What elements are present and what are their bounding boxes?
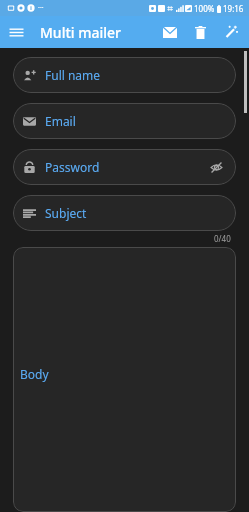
button[interactable]: Send mail <box>155 17 185 47</box>
staticText: Body <box>20 366 49 382</box>
button[interactable]: Open navigation menu <box>0 16 32 48</box>
staticText: ··· <box>38 3 44 13</box>
staticText: 19:16 <box>223 3 244 14</box>
button[interactable]: Body <box>13 247 236 512</box>
staticText: 0/40 <box>214 233 231 244</box>
staticText: Password <box>45 159 100 175</box>
staticText: 100% <box>194 3 215 14</box>
button[interactable]: Magic fill <box>215 16 247 48</box>
button[interactable]: Delete <box>185 17 215 47</box>
staticText: Email <box>45 113 76 129</box>
button[interactable]: Email <box>13 103 236 139</box>
button[interactable]: Password <box>13 149 236 185</box>
staticText: Full name <box>45 67 101 83</box>
staticText: Multi mailer <box>40 23 121 42</box>
button[interactable]: Toggle password visibility <box>206 157 226 177</box>
button[interactable]: Subject <box>13 195 236 231</box>
staticText: Subject <box>45 205 87 221</box>
button[interactable]: Full name <box>13 57 236 93</box>
